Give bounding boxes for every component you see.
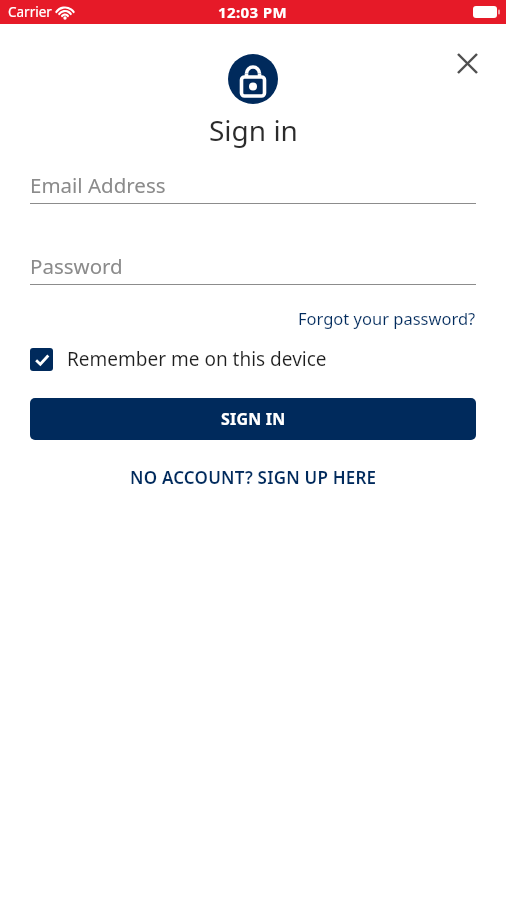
- button[interactable]: Remember me on this device: [30, 346, 327, 372]
- button[interactable]: SIGN IN: [30, 398, 476, 440]
- button[interactable]: Forgot your password?: [298, 307, 476, 329]
- button[interactable]: [452, 48, 482, 78]
- staticText: SIGN IN: [221, 408, 286, 430]
- staticText: Remember me on this device: [67, 346, 327, 372]
- button[interactable]: Password: [30, 252, 476, 285]
- button[interactable]: NO ACCOUNT? SIGN UP HERE: [130, 466, 377, 489]
- staticText: Carrier: [8, 3, 52, 21]
- staticText: Sign in: [209, 111, 298, 149]
- staticText: Password: [30, 252, 123, 280]
- staticText: 12:03 PM: [218, 2, 288, 22]
- staticText: Email Address: [30, 171, 166, 199]
- button[interactable]: Email Address: [30, 171, 476, 204]
